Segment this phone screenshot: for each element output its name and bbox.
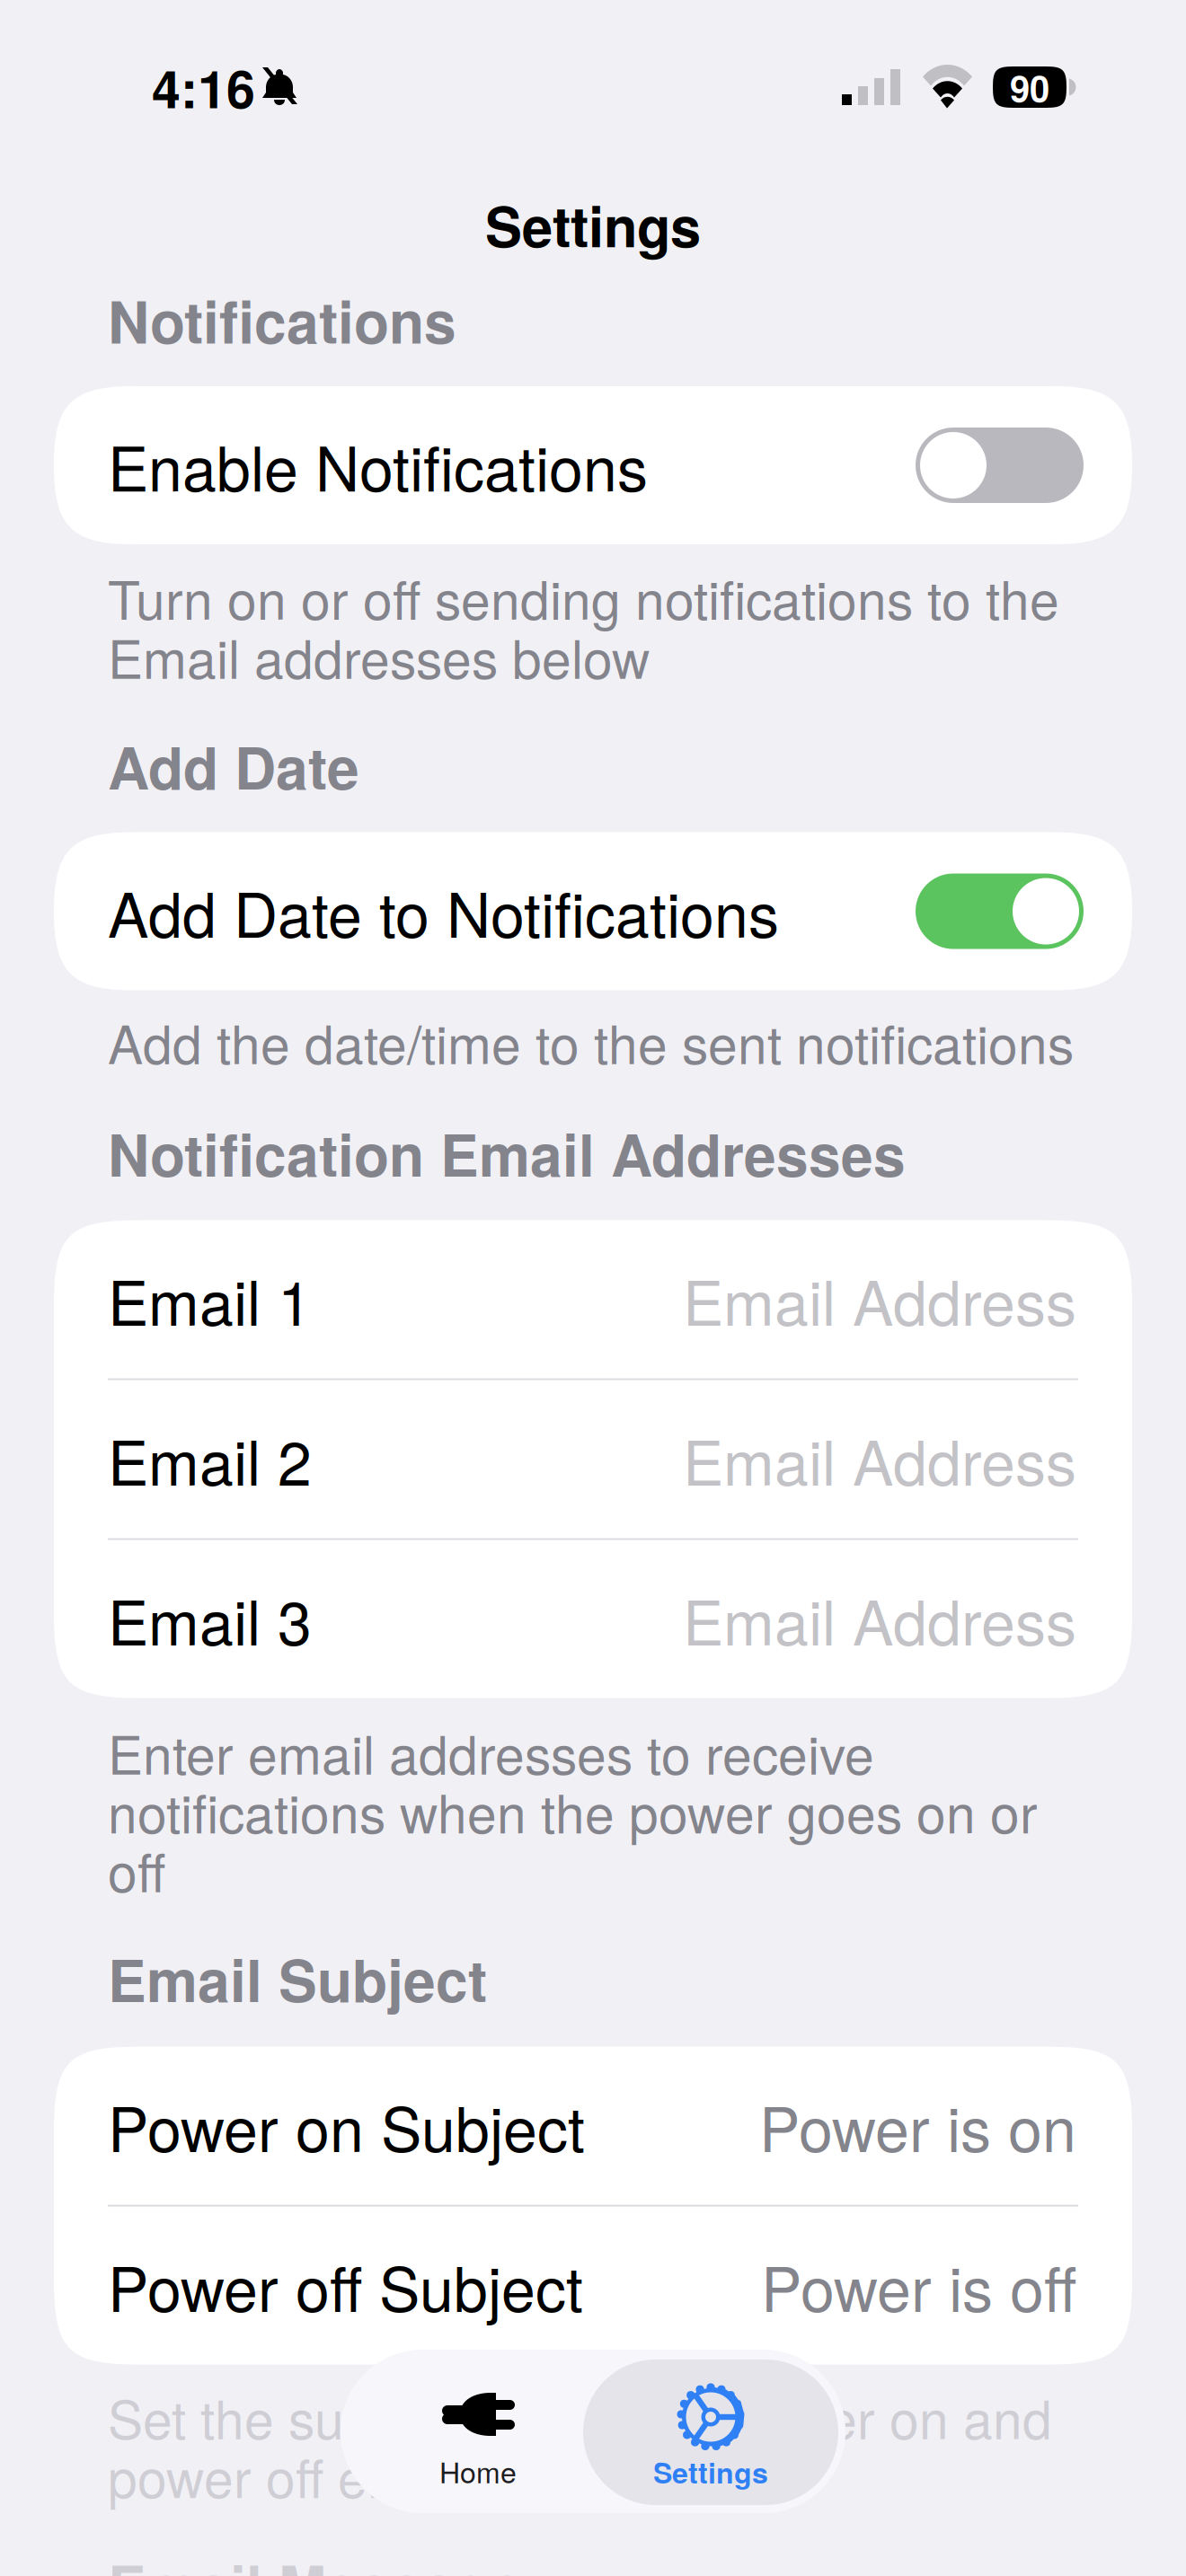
staticText: Add Date to Notifications: [108, 877, 779, 945]
staticText: Power is off: [761, 2251, 1076, 2320]
staticText: Email Subject: [108, 1946, 487, 2011]
button[interactable]: Home: [357, 2360, 599, 2513]
staticText: Notifications: [108, 288, 456, 352]
staticText: 4:16: [152, 58, 255, 116]
staticText: 90: [1010, 67, 1049, 107]
staticText: Add the date/time to the sent notificati…: [108, 1012, 1074, 1071]
button[interactable]: Add Date to Notifications: [54, 832, 1132, 990]
staticText: Enable Notifications: [108, 431, 648, 499]
button[interactable]: Power on Subject: [54, 2047, 1132, 2205]
staticText: Email Address: [683, 1585, 1076, 1653]
staticText: Power is on: [759, 2092, 1076, 2160]
button[interactable]: Power off Subject: [54, 2206, 1132, 2365]
staticText: Email 2: [108, 1425, 312, 1493]
staticText: Add Date: [108, 734, 359, 798]
button[interactable]: Email 3: [54, 1540, 1132, 1698]
staticText: Settings: [485, 194, 701, 256]
staticText: Email 1: [108, 1265, 312, 1333]
staticText: Email Address: [683, 1265, 1076, 1333]
staticText: Email 3: [108, 1585, 312, 1653]
staticText: Notification Email Addresses: [108, 1121, 906, 1185]
button[interactable]: Settings: [583, 2360, 838, 2505]
staticText: Set the subject line for the power on an…: [108, 2387, 1052, 2505]
staticText: Power on Subject: [108, 2092, 585, 2160]
staticText: Enter email addresses to receive notific…: [108, 1722, 1038, 1899]
staticText: Email Message: [108, 2552, 524, 2576]
staticText: Turn on or off sending notifications to …: [108, 568, 1059, 685]
button[interactable]: Email 1: [54, 1220, 1132, 1378]
staticText: Power off Subject: [108, 2251, 583, 2320]
button[interactable]: Email 2: [54, 1380, 1132, 1538]
staticText: Email Address: [683, 1425, 1076, 1493]
button[interactable]: Enable Notifications: [54, 386, 1132, 544]
staticText: Home: [439, 2455, 517, 2487]
staticText: Settings: [653, 2456, 768, 2488]
